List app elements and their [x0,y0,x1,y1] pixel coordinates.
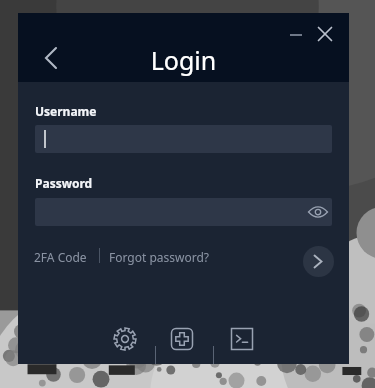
button[interactable] [35,198,332,226]
button[interactable]: Close [311,20,339,48]
button[interactable]: Minimize [282,21,310,49]
button[interactable]: Terminal [228,325,256,353]
button[interactable]: Back [35,42,65,74]
staticText: Login [18,43,349,77]
staticText: Password [35,175,93,191]
button[interactable]: Forgot password? [109,249,210,265]
button[interactable]: Submit [303,246,334,277]
staticText: Username [35,103,97,119]
button[interactable] [35,125,332,153]
button[interactable]: Show password [304,198,332,226]
button[interactable]: Settings [111,325,139,353]
button[interactable]: 2FA Code [34,249,87,265]
button[interactable]: Add [168,325,196,353]
